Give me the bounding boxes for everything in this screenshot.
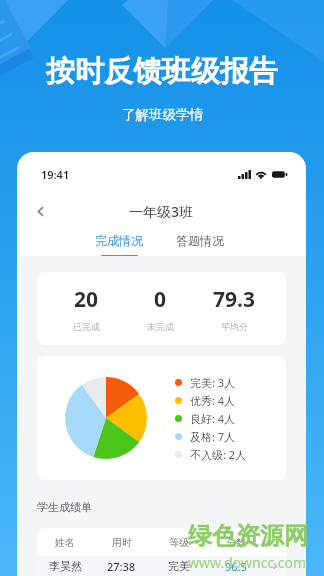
staticText: 及格: 7人 (190, 429, 236, 444)
staticText: 优秀: 4人 (190, 393, 236, 408)
staticText: 完美 (168, 559, 190, 573)
staticText: 用时 (112, 536, 132, 549)
staticText: 平均分 (221, 321, 248, 332)
staticText: 一年级3班 (129, 202, 194, 221)
staticText: 良好: 4人 (190, 411, 236, 426)
staticText: 等级 (169, 536, 189, 549)
staticText: 19:41 (41, 167, 70, 182)
button[interactable]: Back (27, 198, 53, 224)
staticText: 79.3 (213, 285, 255, 314)
staticText: 了解班级学情 (122, 106, 203, 123)
staticText: 不入级: 2人 (190, 447, 247, 462)
staticText: 完成情况 (95, 233, 143, 248)
staticText: 96.5 (225, 559, 247, 574)
staticText: 按时反馈班级报告 (46, 53, 278, 90)
staticText: 绿色资源网 (188, 521, 308, 551)
staticText: www.downcc.com (188, 553, 307, 572)
staticText: 27:38 (107, 559, 136, 574)
staticText: 姓名 (55, 536, 75, 549)
staticText: 已完成 (73, 321, 100, 332)
button[interactable]: 20 (37, 272, 286, 345)
button[interactable]: 李昊然 (37, 556, 286, 576)
staticText: 未完成 (147, 321, 174, 332)
staticText: 分数 (226, 536, 246, 549)
button[interactable]: 答题情况 (170, 232, 230, 256)
staticText: 学生成绩单 (37, 500, 92, 514)
staticText: 答题情况 (176, 233, 224, 248)
staticText: 0 (154, 285, 167, 314)
staticText: 20 (74, 285, 99, 314)
staticText: 李昊然 (49, 559, 82, 573)
staticText: 完美: 3人 (190, 375, 236, 390)
button[interactable]: 完美: 3人 (37, 356, 286, 480)
button[interactable]: 完成情况 (89, 232, 149, 256)
